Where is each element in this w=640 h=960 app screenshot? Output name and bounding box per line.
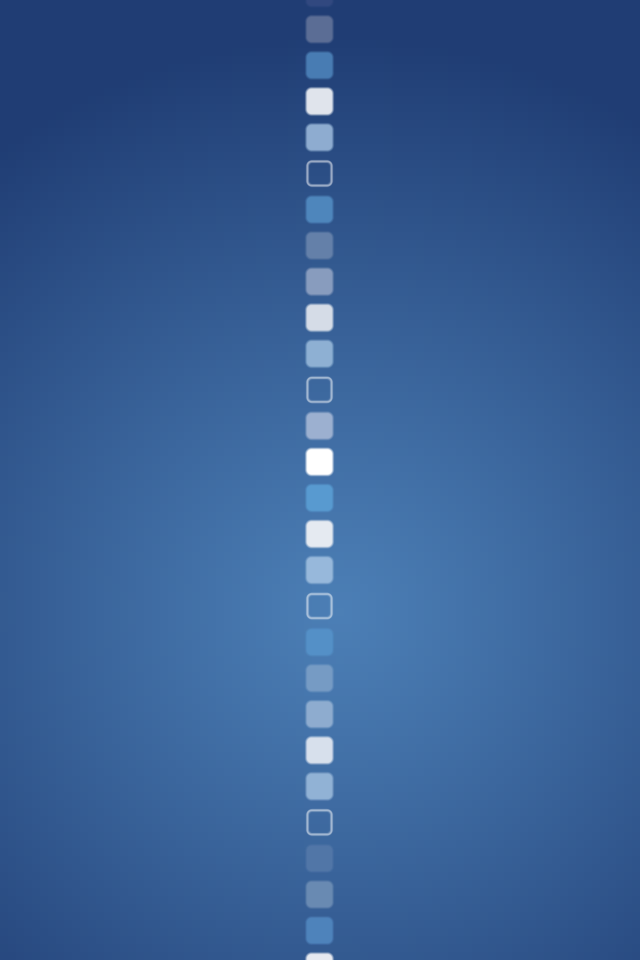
button[interactable]: Step 22 [301,732,337,768]
button[interactable]: Step 28 [301,949,337,960]
button[interactable]: Step 24 [301,804,337,840]
button[interactable]: Step 23 [301,768,337,804]
button[interactable]: Step 16 [301,516,337,552]
button[interactable]: Step 10 [301,300,337,336]
button[interactable]: Step 26 [301,876,337,912]
button[interactable]: Step 14 [301,444,337,480]
button[interactable]: Step 17 [301,552,337,588]
button[interactable]: Step 5 [301,119,337,155]
button[interactable]: Step 3 [301,47,337,83]
button[interactable]: Step 21 [301,696,337,732]
button[interactable]: Step 12 [301,372,337,408]
button[interactable]: Step 20 [301,660,337,696]
button[interactable]: Step 1 [301,0,337,11]
button[interactable]: Step 18 [301,588,337,624]
button[interactable]: Step 2 [301,11,337,47]
button[interactable]: Step 11 [301,336,337,372]
button[interactable]: Step 13 [301,408,337,444]
button[interactable]: Step 6 [301,155,337,191]
button[interactable]: Step 4 [301,83,337,119]
button[interactable]: Step 15 [301,480,337,516]
button[interactable]: Step 7 [301,191,337,227]
button[interactable]: Step 25 [301,840,337,876]
button[interactable]: Step 8 [301,228,337,264]
button[interactable]: Step 19 [301,624,337,660]
button[interactable]: Step 9 [301,264,337,300]
button[interactable]: Step 27 [301,912,337,948]
